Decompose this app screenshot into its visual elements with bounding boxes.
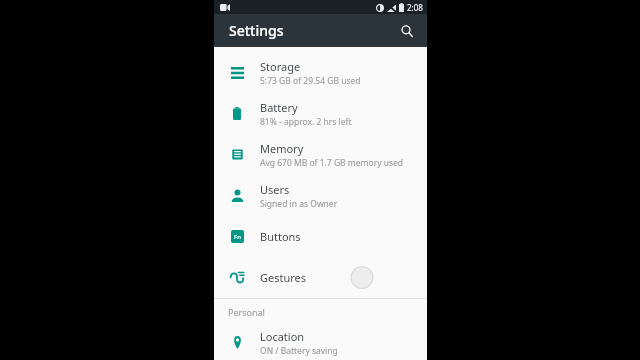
- staticText: Signed in as Owner: [260, 198, 338, 210]
- button[interactable]: Users: [214, 175, 427, 216]
- staticText: 5:73 GB of 29.54 GB used: [260, 75, 361, 87]
- staticText: Fn: [234, 233, 241, 241]
- button[interactable]: Location: [214, 325, 427, 360]
- staticText: Battery: [260, 100, 298, 115]
- staticText: 2:08: [407, 2, 423, 13]
- staticText: Buttons: [260, 229, 301, 244]
- staticText: ON / Battery saving: [260, 345, 338, 357]
- staticText: Avg 670 MB of 1.7 GB memory used: [260, 157, 404, 169]
- button[interactable]: Storage: [214, 52, 427, 93]
- staticText: Settings: [229, 21, 284, 40]
- button[interactable]: Fn: [214, 216, 427, 257]
- button[interactable]: Memory: [214, 134, 427, 175]
- staticText: Personal: [228, 306, 265, 318]
- staticText: Memory: [260, 141, 304, 156]
- button[interactable]: Battery: [214, 93, 427, 134]
- staticText: 24 apps installed: [260, 35, 328, 47]
- staticText: Storage: [260, 59, 301, 74]
- staticText: Gestures: [260, 270, 307, 285]
- staticText: Location: [260, 329, 305, 344]
- button[interactable]: Gestures: [214, 257, 427, 298]
- staticText: 81% - approx. 2 hrs left: [260, 116, 352, 128]
- button[interactable]: Search: [394, 18, 420, 44]
- staticText: Users: [260, 182, 290, 197]
